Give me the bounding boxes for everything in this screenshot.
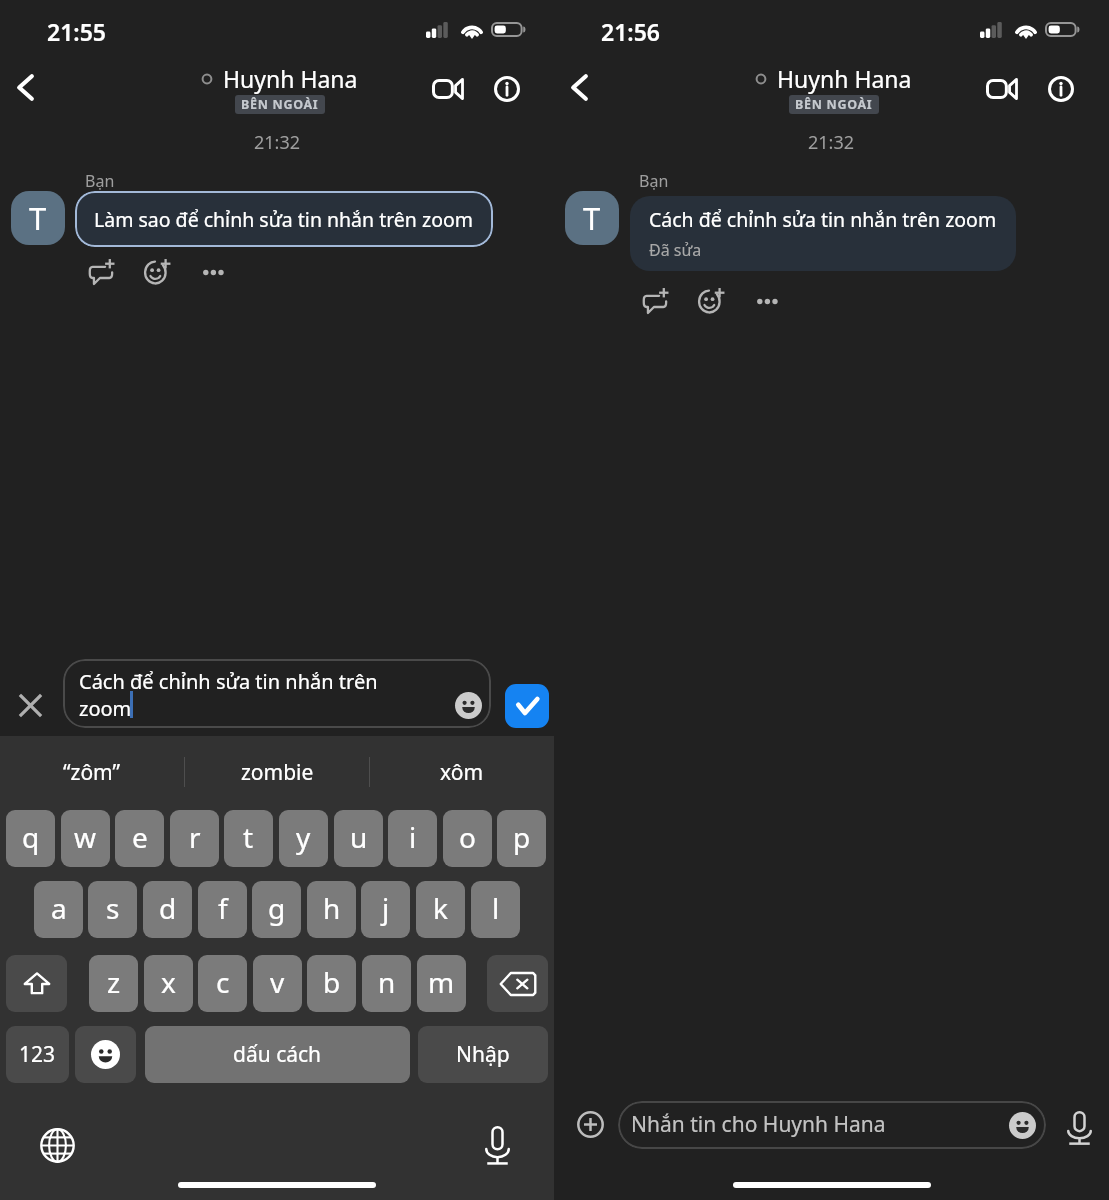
staticText: xôm — [440, 758, 484, 787]
staticText: q — [22, 818, 40, 856]
button[interactable]: More options — [190, 247, 238, 295]
staticText: Nhập — [456, 1040, 510, 1069]
button[interactable]: z — [89, 955, 138, 1012]
button[interactable]: Cách để chỉnh sửa tin nhắn trên — [63, 659, 491, 728]
button[interactable]: Change keyboard — [33, 1121, 81, 1169]
button[interactable]: g — [252, 881, 301, 938]
button[interactable]: Làm sao để chỉnh sửa tin nhắn trên zoom — [75, 191, 493, 247]
button[interactable]: Add attachment — [572, 1106, 609, 1143]
button[interactable]: q — [6, 810, 55, 867]
staticText: y — [296, 818, 311, 856]
staticText: zoom — [79, 695, 132, 722]
button[interactable]: Video call — [964, 63, 1016, 111]
button[interactable]: More options — [744, 276, 792, 324]
button[interactable]: Backspace — [487, 955, 548, 1012]
button[interactable]: Voice message — [1060, 1108, 1100, 1148]
button[interactable]: Save edit — [505, 684, 549, 728]
staticText: 123 — [19, 1040, 56, 1069]
button[interactable]: o — [443, 810, 492, 867]
staticText: r — [189, 818, 201, 856]
staticText: 21:56 — [601, 16, 660, 47]
staticText: u — [350, 818, 368, 856]
staticText: e — [132, 818, 148, 856]
button[interactable]: p — [497, 810, 546, 867]
staticText: s — [106, 889, 120, 927]
staticText: dấu cách — [233, 1040, 322, 1069]
button[interactable]: Reply — [78, 247, 126, 295]
staticText: x — [161, 963, 176, 1001]
button[interactable]: Cancel edit — [9, 675, 53, 719]
button[interactable]: e — [115, 810, 164, 867]
staticText: t — [243, 818, 254, 856]
button[interactable]: w — [61, 810, 110, 867]
button[interactable]: n — [362, 955, 411, 1012]
button[interactable]: Emoji keyboard — [75, 1026, 136, 1083]
staticText: Đã sửa — [649, 239, 702, 261]
staticText: T — [29, 197, 47, 239]
button[interactable]: k — [416, 881, 465, 938]
button[interactable]: d — [143, 881, 192, 938]
staticText: i — [409, 818, 417, 856]
staticText: Làm sao để chỉnh sửa tin nhắn trên zoom — [94, 206, 473, 233]
button[interactable]: j — [361, 881, 410, 938]
staticText: Bạn — [85, 170, 115, 192]
button[interactable]: s — [88, 881, 137, 938]
button[interactable]: zombie — [185, 736, 369, 808]
staticText: c — [216, 963, 230, 1001]
staticText: Cách để chỉnh sửa tin nhắn trên — [79, 668, 378, 695]
staticText: Huynh Hana — [223, 63, 358, 94]
staticText: b — [323, 963, 341, 1001]
button[interactable]: Conversation info — [470, 63, 522, 111]
staticText: f — [218, 889, 228, 927]
button[interactable]: c — [198, 955, 247, 1012]
staticText: Nhắn tin cho Huynh Hana — [631, 1110, 886, 1139]
button[interactable]: Nhập — [418, 1026, 548, 1083]
button[interactable]: Numbers — [6, 1026, 69, 1083]
button[interactable]: Emoji — [455, 692, 482, 719]
staticText: BÊN NGOÀI — [795, 96, 873, 113]
button[interactable]: Emoji — [1009, 1112, 1036, 1139]
button[interactable]: h — [307, 881, 356, 938]
staticText: Bạn — [639, 170, 669, 192]
staticText: Cách để chỉnh sửa tin nhắn trên zoom — [649, 206, 997, 233]
button[interactable]: React — [133, 247, 181, 295]
staticText: a — [51, 889, 67, 927]
button[interactable]: Cách để chỉnh sửa tin nhắn trên zoom — [630, 196, 1016, 271]
staticText: l — [492, 889, 500, 927]
staticText: 21:32 — [254, 130, 301, 155]
button[interactable]: i — [388, 810, 437, 867]
button[interactable]: React — [687, 276, 735, 324]
staticText: BÊN NGOÀI — [241, 96, 319, 113]
staticText: 21:55 — [47, 16, 106, 47]
staticText: Huynh Hana — [777, 63, 912, 94]
button[interactable]: Nhắn tin cho Huynh Hana — [618, 1101, 1046, 1149]
button[interactable]: x — [144, 955, 193, 1012]
staticText: g — [268, 889, 286, 927]
staticText: “zôm” — [63, 758, 121, 787]
button[interactable]: “zôm” — [0, 736, 184, 808]
button[interactable]: r — [170, 810, 219, 867]
button[interactable]: Dictation — [473, 1116, 523, 1166]
staticText: z — [107, 963, 121, 1001]
button[interactable]: a — [34, 881, 83, 938]
button[interactable]: Back — [2, 63, 50, 111]
button[interactable]: f — [198, 881, 247, 938]
button[interactable]: m — [417, 955, 466, 1012]
button[interactable]: xôm — [370, 736, 554, 808]
button[interactable]: u — [334, 810, 383, 867]
button[interactable]: dấu cách — [145, 1026, 410, 1083]
button[interactable]: Shift — [6, 955, 67, 1012]
staticText: d — [159, 889, 177, 927]
staticText: 21:32 — [808, 130, 855, 155]
button[interactable]: b — [307, 955, 356, 1012]
staticText: v — [270, 963, 285, 1001]
button[interactable]: l — [471, 881, 520, 938]
button[interactable]: v — [253, 955, 302, 1012]
button[interactable]: Back — [556, 63, 604, 111]
button[interactable]: t — [224, 810, 273, 867]
staticText: h — [323, 889, 341, 927]
button[interactable]: Reply — [632, 276, 680, 324]
button[interactable]: Conversation info — [1024, 63, 1076, 111]
button[interactable]: y — [279, 810, 328, 867]
button[interactable]: Video call — [410, 63, 462, 111]
